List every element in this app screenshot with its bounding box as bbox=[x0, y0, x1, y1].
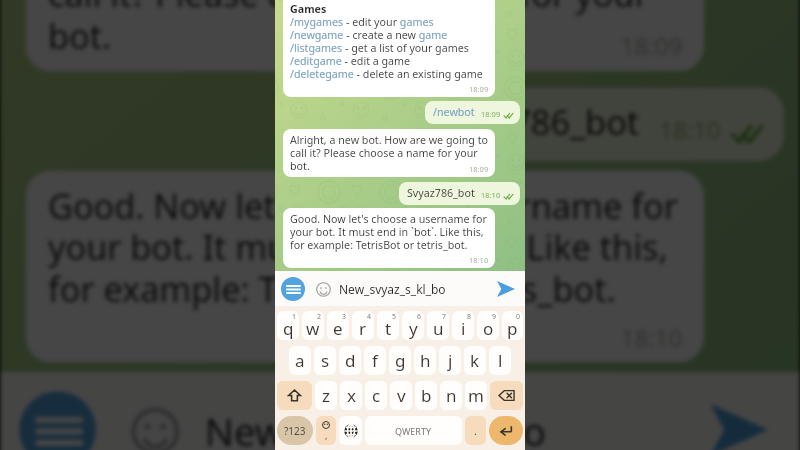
staticText: f bbox=[372, 349, 378, 372]
button[interactable]: a bbox=[289, 346, 311, 375]
button[interactable]: u bbox=[427, 311, 449, 340]
staticText: g bbox=[395, 349, 406, 372]
staticText: z bbox=[322, 384, 330, 407]
button[interactable]: w bbox=[302, 311, 324, 340]
staticText: New_svyaz_s_kl_bo bbox=[339, 281, 446, 297]
staticText: d bbox=[345, 349, 356, 372]
button[interactable]: f bbox=[364, 346, 386, 375]
button[interactable]: Svyaz786_bot bbox=[407, 186, 513, 201]
button[interactable]: Shift bbox=[277, 381, 312, 410]
button[interactable]: . bbox=[465, 416, 486, 445]
staticText: c bbox=[372, 384, 381, 407]
button[interactable]: t bbox=[377, 311, 399, 340]
staticText: Svyaz786_bot bbox=[422, 100, 640, 148]
staticText: , bbox=[325, 429, 328, 441]
staticText: l bbox=[498, 349, 503, 372]
staticText: 4 bbox=[367, 312, 372, 322]
button[interactable]: c bbox=[365, 381, 387, 410]
button[interactable]: Emoji bbox=[125, 401, 182, 450]
staticText: 18:10 bbox=[621, 321, 685, 353]
staticText: Good. Now let's choose a username for yo… bbox=[290, 212, 488, 252]
staticText: 3 bbox=[342, 312, 347, 322]
staticText: m bbox=[468, 384, 484, 407]
button[interactable]: ?123 bbox=[277, 416, 313, 445]
button[interactable]: k bbox=[464, 346, 486, 375]
button[interactable]: o bbox=[477, 311, 499, 340]
staticText: 2 bbox=[317, 312, 322, 322]
staticText: x bbox=[347, 384, 356, 407]
staticText: 8 bbox=[467, 312, 472, 322]
staticText: j bbox=[448, 349, 453, 372]
button[interactable]: s bbox=[314, 346, 336, 375]
button[interactable]: Emoji keyboard bbox=[316, 416, 336, 445]
button[interactable]: z bbox=[315, 381, 337, 410]
button[interactable]: q bbox=[277, 311, 299, 340]
staticText: Alright, a new bot. How are we going to … bbox=[290, 133, 488, 173]
button[interactable]: m bbox=[465, 381, 487, 410]
button[interactable]: Menu bbox=[281, 277, 305, 301]
staticText: 18:09 bbox=[469, 84, 489, 94]
staticText: r bbox=[359, 317, 367, 340]
button[interactable]: y bbox=[402, 311, 424, 340]
staticText: u bbox=[433, 317, 444, 340]
staticText: ?123 bbox=[284, 424, 306, 438]
button[interactable]: Enter bbox=[489, 416, 523, 445]
button[interactable]: Emoji bbox=[314, 280, 332, 298]
staticText: 18:09 bbox=[469, 164, 489, 174]
staticText: Games /mygames - edit your games /newgam… bbox=[290, 2, 483, 81]
button[interactable]: v bbox=[390, 381, 412, 410]
staticText: y bbox=[409, 317, 418, 340]
staticText: 18:10 bbox=[659, 113, 723, 145]
staticText: 18:09 bbox=[621, 30, 685, 62]
staticText: 18:10 bbox=[481, 190, 501, 200]
button[interactable]: Alright, a new bot. How are we going to … bbox=[283, 129, 495, 177]
staticText: t bbox=[385, 317, 392, 340]
staticText: p bbox=[507, 317, 518, 340]
staticText: New_svyaz_s_kl_bo bbox=[205, 404, 547, 450]
staticText: i bbox=[461, 317, 466, 340]
button[interactable]: Change language bbox=[339, 416, 362, 445]
staticText: s bbox=[321, 349, 330, 372]
button[interactable]: /newbot bbox=[433, 105, 513, 120]
button[interactable]: d bbox=[339, 346, 361, 375]
button[interactable]: n bbox=[440, 381, 462, 410]
staticText: 6 bbox=[417, 312, 422, 322]
staticText: /newbot bbox=[433, 105, 475, 120]
button[interactable]: Menu bbox=[19, 391, 96, 450]
button[interactable]: Backspace bbox=[490, 381, 523, 410]
button[interactable]: Alright, a new bot. How are we going to … bbox=[26, 0, 704, 71]
staticText: Svyaz786_bot bbox=[407, 186, 475, 201]
staticText: 18:10 bbox=[469, 255, 489, 265]
button[interactable]: l bbox=[489, 346, 511, 375]
button[interactable]: p bbox=[502, 311, 523, 340]
staticText: 1 bbox=[292, 312, 297, 322]
button[interactable]: g bbox=[389, 346, 411, 375]
button[interactable]: r bbox=[352, 311, 374, 340]
staticText: a bbox=[295, 349, 305, 372]
staticText: k bbox=[470, 349, 480, 372]
staticText: 5 bbox=[392, 312, 397, 322]
button[interactable]: b bbox=[415, 381, 437, 410]
button[interactable]: Send bbox=[694, 385, 784, 450]
staticText: . bbox=[474, 423, 477, 438]
button[interactable]: i bbox=[452, 311, 474, 340]
staticText: QWERTY bbox=[395, 425, 432, 437]
button[interactable]: Good. Now let's choose a username for yo… bbox=[283, 208, 495, 268]
button[interactable]: j bbox=[439, 346, 461, 375]
staticText: 18:09 bbox=[481, 109, 501, 119]
staticText: o bbox=[483, 317, 494, 340]
button[interactable]: QWERTY bbox=[365, 416, 462, 445]
staticText: Alright, a new bot. How are we going to … bbox=[48, 0, 682, 59]
button[interactable]: Good. Now let's choose a username for yo… bbox=[26, 171, 704, 363]
button[interactable]: Games /mygames - edit your games /newgam… bbox=[283, 0, 495, 97]
staticText: w bbox=[306, 317, 320, 340]
button[interactable]: e bbox=[327, 311, 349, 340]
button[interactable]: x bbox=[340, 381, 362, 410]
button[interactable]: Svyaz786_bot bbox=[422, 100, 762, 148]
staticText: Good. Now let's choose a username for yo… bbox=[48, 183, 682, 311]
staticText: 0 bbox=[516, 312, 521, 322]
button[interactable]: h bbox=[414, 346, 436, 375]
button[interactable]: Send bbox=[492, 275, 520, 303]
staticText: e bbox=[333, 317, 343, 340]
staticText: q bbox=[283, 317, 294, 340]
